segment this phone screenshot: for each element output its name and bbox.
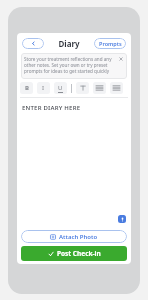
button[interactable]: Prompts: [94, 38, 126, 49]
button[interactable]: Text style: [76, 82, 89, 94]
button[interactable]: Attach Photo: [21, 230, 127, 243]
button[interactable]: Bold: [20, 82, 33, 94]
button[interactable]: Bulleted list: [93, 82, 106, 94]
staticText: I: [42, 84, 45, 92]
button[interactable]: Underline: [54, 82, 67, 94]
staticText: ENTER DIARY HERE: [22, 104, 81, 112]
staticText: Diary: [58, 38, 80, 49]
staticText: B: [25, 84, 29, 92]
staticText: Attach Photo: [59, 233, 98, 241]
button[interactable]: Italic: [37, 82, 50, 94]
button[interactable]: Post Check-in: [21, 246, 127, 261]
staticText: Prompts: [99, 40, 122, 47]
button[interactable]: Numbered list: [110, 82, 123, 94]
button[interactable]: Dismiss: [118, 56, 124, 62]
staticText: U: [58, 84, 63, 92]
staticText: Post Check-in: [57, 249, 101, 258]
button[interactable]: Voice input: [118, 215, 126, 223]
staticText: Store your treatment reflections and any…: [24, 56, 117, 74]
button[interactable]: Back: [22, 38, 44, 49]
